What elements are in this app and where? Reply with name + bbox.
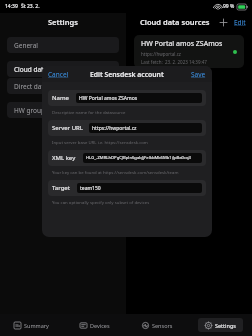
button[interactable]: Devices [73, 318, 117, 332]
staticText: Name [52, 94, 69, 102]
staticText: Settings [215, 322, 236, 329]
button[interactable]: Server URL [48, 120, 206, 136]
staticText: HW Portal amos ZSAmos [141, 39, 223, 49]
staticText: https://hwportal.cz [92, 125, 137, 132]
button[interactable]: HW Portal amos ZSAmos [134, 35, 244, 68]
staticText: Last fetch: 23. 2. 2023 14:39:47 [141, 59, 207, 64]
staticText: Cancel [48, 70, 69, 79]
staticText: You can optionally specify only subset o… [52, 199, 150, 205]
staticText: Server URL [52, 124, 83, 132]
button[interactable]: Sensors [135, 318, 180, 332]
button[interactable]: Edit [233, 18, 247, 27]
staticText: HLG_-ZMRLhDPgCJBpln6gabJjFelkbMk6Mb1iJpB… [86, 155, 191, 161]
staticText: Direct data sources [14, 82, 73, 91]
staticText: https://hwportal.cz [141, 51, 181, 57]
staticText: Your key can be found at https://sensdes… [52, 169, 179, 175]
button[interactable]: Direct data sources [7, 78, 119, 94]
staticText: Sensors [152, 322, 173, 329]
button[interactable]: Target [48, 180, 206, 196]
button[interactable]: XML key [48, 150, 206, 166]
button[interactable]: Cancel [42, 68, 75, 81]
staticText: Target [52, 184, 70, 192]
staticText: Cloud data sources [140, 17, 210, 27]
button[interactable]: Summary [7, 318, 56, 332]
staticText: Devices [90, 322, 110, 329]
staticText: 14:39 [5, 3, 18, 10]
staticText: team150 [80, 185, 101, 192]
button[interactable]: Add data source [217, 16, 229, 28]
staticText: Save [191, 70, 206, 79]
staticText: Št 23. 2. [21, 3, 40, 10]
button[interactable]: Save [185, 68, 212, 81]
staticText: Edit [234, 18, 246, 27]
button[interactable]: General [7, 37, 119, 53]
staticText: Summary [24, 322, 49, 329]
staticText: HW group tools [14, 106, 62, 115]
button[interactable]: Name [48, 90, 206, 106]
staticText: 99 % [223, 3, 235, 10]
staticText: Input server base URL i.e. https://sensd… [52, 139, 148, 145]
staticText: Descriptive name for the datasource [52, 109, 126, 115]
staticText: XML key [52, 154, 76, 162]
button[interactable]: Settings [198, 318, 243, 332]
staticText: Cloud data sources [14, 65, 73, 74]
button[interactable]: Cloud data sources [7, 61, 119, 77]
staticText: Settings [48, 17, 78, 27]
staticText: HW Portal amos ZSAmos [79, 95, 138, 102]
staticText: Edit Sensdesk account [90, 70, 164, 79]
staticText: General [14, 41, 38, 50]
button[interactable]: HW group tools [7, 102, 119, 118]
